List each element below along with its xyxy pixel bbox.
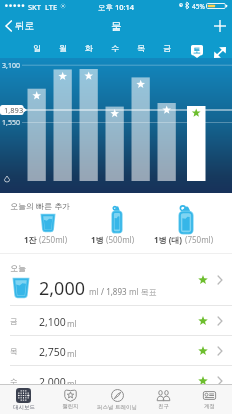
button[interactable]: 1잔	[9, 207, 83, 247]
staticText: 금	[10, 317, 18, 326]
staticText: 월	[59, 43, 67, 53]
button[interactable]: 일	[26, 38, 48, 58]
button[interactable]: 퍼스널 트레이닝	[94, 385, 140, 414]
button[interactable]: 뒤로	[0, 17, 42, 35]
button[interactable]: 추가	[208, 14, 232, 38]
staticText: (750ml)	[185, 234, 214, 245]
staticText: 뒤로	[15, 20, 34, 32]
button[interactable]: 1병 (대)	[147, 207, 221, 247]
staticText: 2,100	[39, 315, 66, 329]
staticText: / 1,893	[99, 286, 129, 297]
button[interactable]: 계정	[186, 385, 232, 414]
staticText: 일	[33, 43, 41, 53]
button[interactable]: 월	[52, 38, 74, 58]
button[interactable]: 목	[0, 336, 232, 366]
button[interactable]: 1병	[76, 207, 150, 247]
staticText: 목	[10, 347, 18, 356]
staticText: 챌린지	[62, 403, 79, 410]
button[interactable]: 수	[104, 38, 126, 58]
button[interactable]: 대시보드	[0, 385, 47, 414]
staticText: ml	[67, 348, 77, 359]
staticText: 친구	[158, 403, 169, 410]
staticText: 1병 (대)	[154, 234, 183, 245]
button[interactable]: 챌린지	[47, 385, 94, 414]
staticText: (250ml)	[39, 234, 68, 245]
button[interactable]: 오늘	[0, 254, 232, 306]
button[interactable]: 수	[0, 366, 232, 396]
staticText: ml	[67, 378, 77, 389]
staticText: 1,893	[4, 105, 24, 115]
staticText: 퍼스널 트레이닝	[97, 403, 137, 411]
staticText: 오늘	[10, 263, 26, 273]
staticText: 목	[137, 43, 145, 53]
staticText: 2,750	[39, 345, 66, 359]
button[interactable]: 화	[78, 38, 100, 58]
staticText: 3,100	[2, 61, 20, 71]
staticText: 2,000	[39, 375, 66, 389]
staticText: 토	[193, 46, 201, 55]
button[interactable]: 금	[156, 38, 178, 58]
staticText: 화	[85, 43, 93, 53]
staticText: 2,000	[39, 276, 86, 301]
staticText: ml	[89, 286, 99, 297]
button[interactable]: 금	[0, 306, 232, 336]
staticText: SKT	[28, 2, 41, 12]
staticText: 수	[10, 377, 18, 386]
button[interactable]: 전체 화면	[210, 43, 230, 58]
staticText: 오늘의 빠른 추가	[10, 200, 71, 211]
staticText: 물	[111, 20, 122, 33]
staticText: (500ml)	[106, 234, 135, 245]
button[interactable]: 토	[191, 45, 203, 58]
staticText: 45%	[192, 2, 205, 11]
staticText: 금	[163, 43, 171, 53]
staticText: 1병	[91, 234, 104, 245]
staticText: LTE	[45, 2, 58, 12]
staticText: 1,550	[2, 118, 20, 128]
staticText: ml 목표	[129, 286, 157, 297]
staticText: ml	[67, 318, 77, 329]
staticText: 대시보드	[13, 404, 35, 411]
staticText: 1잔	[24, 234, 37, 245]
staticText: 수	[111, 43, 119, 53]
staticText: 계정	[204, 403, 215, 410]
button[interactable]: 목	[130, 38, 152, 58]
button[interactable]: 친구	[140, 385, 186, 414]
staticText: 오후 10:14	[98, 2, 135, 12]
